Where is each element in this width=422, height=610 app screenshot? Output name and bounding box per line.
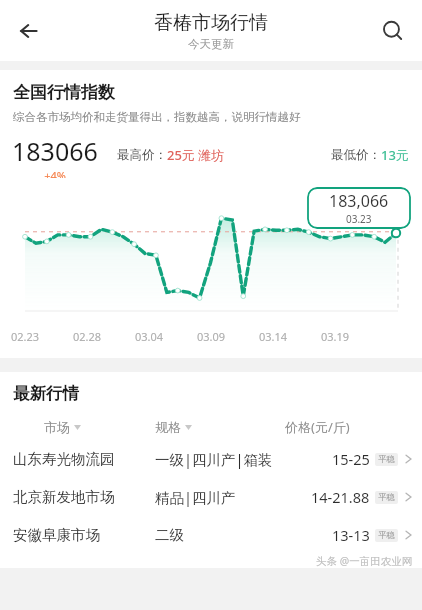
staticText: 二级 [155, 526, 295, 544]
button[interactable]: 规格 [155, 419, 285, 435]
staticText: 精品|四川产 [155, 487, 295, 507]
button[interactable]: 山东寿光物流园 [0, 440, 422, 478]
button[interactable]: 安徽阜康市场 [0, 516, 422, 554]
staticText: 25元 潍坊 [167, 146, 225, 164]
staticText: 市场 [44, 419, 70, 435]
staticText: 183,066 [329, 190, 389, 212]
staticText: 山东寿光物流园 [13, 450, 155, 468]
button[interactable]: 市场 [44, 419, 155, 435]
staticText: 今天更新 [188, 37, 234, 51]
staticText: 平稳 [378, 530, 395, 541]
staticText: 03.09 [197, 329, 226, 344]
staticText: 香椿市场行情 [154, 11, 268, 35]
staticText: 183066 [12, 134, 98, 168]
staticText: 最低价： [331, 147, 381, 163]
staticText: 头条 @一亩田农业网 [316, 554, 413, 568]
staticText: 最高价： [117, 147, 167, 163]
button[interactable]: Back [6, 7, 54, 55]
staticText: +4% [12, 168, 98, 178]
staticText: 规格 [155, 419, 181, 435]
staticText: 最新行情 [13, 383, 79, 404]
staticText: 平稳 [378, 454, 395, 465]
button[interactable]: Search [370, 8, 416, 54]
staticText: 安徽阜康市场 [13, 526, 155, 544]
staticText: 02.23 [11, 329, 40, 344]
staticText: 03.19 [321, 329, 350, 344]
staticText: 03.14 [259, 329, 288, 344]
staticText: 全国行情指数 [13, 82, 115, 103]
button[interactable]: 北京新发地市场 [0, 478, 422, 516]
staticText: 02.28 [73, 329, 102, 344]
staticText: 15-25 [332, 449, 370, 469]
staticText: 14-21.88 [311, 487, 370, 507]
staticText: 北京新发地市场 [13, 488, 155, 506]
staticText: 03.23 [346, 212, 372, 226]
staticText: 一级|四川产|箱装 [155, 449, 295, 469]
staticText: 13-13 [332, 525, 370, 545]
staticText: 13元 [381, 146, 409, 164]
staticText: 价格(元/斤) [285, 418, 350, 436]
staticText: 平稳 [378, 492, 395, 503]
staticText: 03.04 [135, 329, 164, 344]
staticText: 综合各市场均价和走货量得出，指数越高，说明行情越好 [13, 110, 301, 124]
